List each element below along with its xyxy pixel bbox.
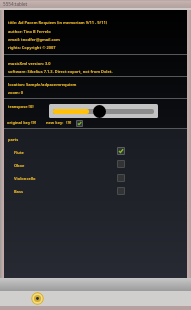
staticText: transpose [0] — [8, 104, 34, 109]
staticText: musicXml version: 3.0 — [8, 61, 51, 66]
staticText: Bass — [14, 189, 23, 194]
button[interactable]: Unchecked — [117, 160, 125, 168]
staticText: 5554:tablet — [3, 1, 28, 7]
staticText: parts — [8, 137, 19, 142]
button[interactable]: Checked — [117, 147, 125, 155]
staticText: software: Sibelius 7.1.3. Direct export,… — [8, 69, 113, 74]
staticText: author: Tino B Ferrelo — [8, 29, 51, 34]
staticText: title: Ad Pacem Requiem (in memoriam 9/1… — [8, 20, 108, 25]
staticText: email: tnodfer@gmail.com — [8, 37, 60, 42]
button[interactable]: App icon — [31, 292, 44, 305]
button[interactable]: Transpose slider — [93, 105, 106, 118]
staticText: location: Sample/adpacemrequiem — [8, 82, 77, 87]
button[interactable]: Checked — [76, 120, 83, 127]
staticText: Flute — [14, 150, 24, 155]
staticText: rights: Copyright © 2007 — [8, 45, 56, 50]
staticText: original key [9] — [7, 120, 37, 125]
staticText: zoom: 0 — [8, 90, 24, 95]
button[interactable]: Unchecked — [117, 187, 125, 195]
staticText: Violoncello — [14, 176, 36, 181]
staticText: Oboe — [14, 163, 25, 168]
staticText: new key: [9] — [46, 120, 72, 125]
button[interactable]: Unchecked — [117, 174, 125, 182]
